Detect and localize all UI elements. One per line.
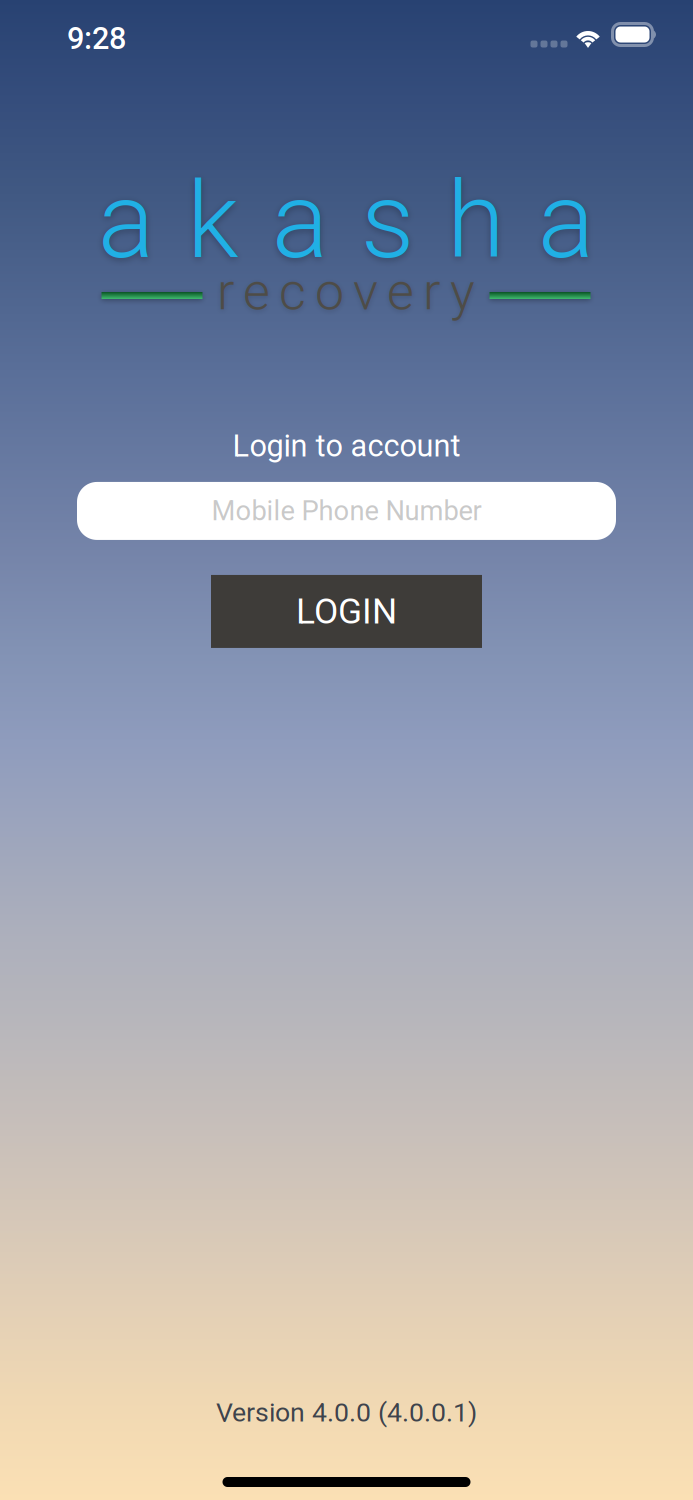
staticText: akasha	[98, 159, 594, 283]
staticText: Version 4.0.0 (4.0.0.1)	[216, 1397, 477, 1428]
staticText: Mobile Phone Number	[211, 495, 481, 527]
staticText: recovery	[217, 261, 475, 322]
staticText: 9:28	[67, 20, 126, 56]
button[interactable]: LOGIN	[211, 575, 482, 648]
staticText: Login to account	[232, 428, 460, 464]
button[interactable]: Mobile Phone Number	[77, 482, 616, 540]
staticText: LOGIN	[296, 591, 397, 632]
